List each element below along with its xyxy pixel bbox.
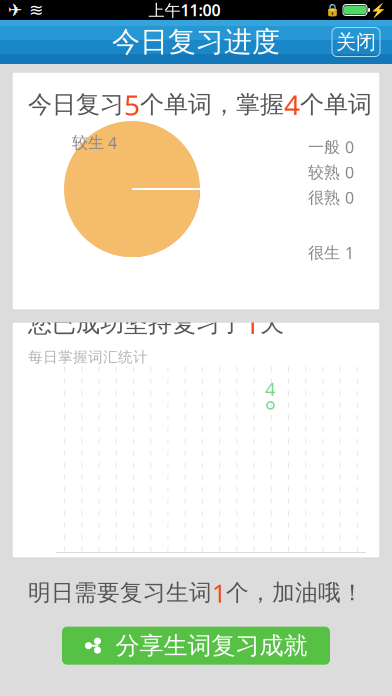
staticText: 上午11:00 [148, 0, 220, 21]
staticText: 您已成功坚持复习了 [28, 309, 244, 338]
staticText: 分享生词复习成就 [115, 631, 307, 660]
staticText: 5 [232, 556, 242, 579]
staticText: 关闭 [336, 30, 376, 54]
staticText: 4 [180, 556, 190, 579]
staticText: 6 [283, 556, 293, 579]
staticText: 个单词，掌握 [140, 90, 284, 119]
staticText: 2 [77, 556, 87, 579]
staticText: ⚡ [370, 2, 387, 18]
button[interactable]: 关闭 [332, 27, 380, 56]
staticText: 4 [108, 132, 117, 153]
staticText: 7 [335, 556, 345, 579]
staticText: 3 [128, 556, 138, 579]
staticText: 1 [212, 576, 226, 610]
staticText: 较生 [72, 133, 104, 152]
staticText: 每日掌握词汇统计 [28, 348, 148, 366]
staticText: 0 [345, 187, 354, 208]
staticText: 一般 [308, 137, 340, 157]
staticText: 0 [345, 162, 354, 183]
staticText: 天 [260, 309, 284, 338]
staticText: ✈ [8, 0, 23, 20]
staticText: 1 [345, 242, 354, 263]
staticText: 4 [265, 376, 276, 401]
staticText: 很生 [308, 243, 340, 263]
staticText: 5 [124, 86, 140, 123]
staticText: 🔒 [325, 3, 340, 17]
staticText: 个单词 [300, 90, 372, 119]
staticText: 很熟 [308, 188, 340, 207]
staticText: ≋ [29, 0, 44, 20]
staticText: 今日复习进度 [112, 25, 280, 59]
button[interactable]: 分享生词复习成就 [62, 627, 330, 665]
staticText: 0 [345, 136, 354, 158]
staticText: 个，加油哦！ [226, 579, 364, 607]
staticText: 1 [244, 305, 260, 342]
staticText: 较熟 [308, 162, 340, 182]
staticText: 明日需要复习生词 [28, 579, 212, 607]
staticText: 4 [284, 86, 300, 123]
staticText: 今日复习 [28, 90, 124, 119]
